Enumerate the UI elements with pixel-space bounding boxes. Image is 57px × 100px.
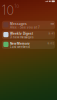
- staticText: 10: [2, 3, 14, 18]
- button[interactable]: Weekly Digest: [2, 31, 55, 39]
- staticText: 3 new messages: [10, 35, 33, 39]
- staticText: now: [50, 22, 54, 25]
- button[interactable]: Messages: [2, 21, 55, 29]
- staticText: Last weekend: [10, 45, 30, 49]
- staticText: 8:02: [47, 42, 54, 45]
- staticText: Alex · See you at 7: [10, 26, 40, 29]
- staticText: 10: [14, 3, 19, 9]
- button[interactable]: New Memory: [2, 40, 55, 49]
- staticText: 9:41: [48, 32, 54, 35]
- staticText: Messages: [10, 22, 27, 26]
- staticText: Weekly Digest: [10, 32, 33, 35]
- staticText: New Memory: [10, 42, 30, 45]
